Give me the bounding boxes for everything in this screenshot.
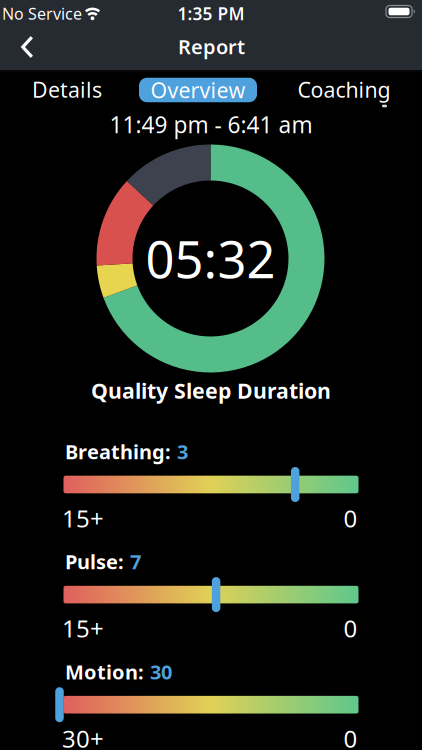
staticText: 30	[150, 658, 172, 685]
staticText: 0	[343, 502, 357, 534]
staticText: 15+	[62, 502, 104, 534]
staticText: 7	[130, 548, 141, 575]
staticText: 15+	[62, 612, 104, 644]
staticText: Overview	[150, 76, 245, 104]
staticText: 0	[343, 612, 357, 644]
staticText: 1:35 PM	[177, 2, 244, 25]
staticText: Quality Sleep Duration	[91, 376, 331, 405]
button[interactable]: Overview	[139, 78, 257, 102]
staticText: 30+	[62, 722, 104, 750]
staticText: Pulse:	[65, 548, 124, 575]
staticText: No Service	[2, 3, 82, 24]
staticText: Breathing:	[65, 438, 171, 465]
staticText: 05:32	[145, 225, 275, 292]
button[interactable]: Coaching	[297, 75, 390, 104]
staticText: 3	[177, 438, 188, 465]
button[interactable]: Details	[32, 75, 102, 104]
button[interactable]: Back	[6, 25, 50, 69]
staticText: Motion:	[65, 658, 144, 685]
staticText: Report	[178, 33, 245, 60]
staticText: Details	[32, 75, 102, 104]
staticText: 0	[343, 722, 357, 750]
staticText: Coaching	[297, 75, 390, 104]
staticText: 11:49 pm - 6:41 am	[109, 109, 312, 139]
